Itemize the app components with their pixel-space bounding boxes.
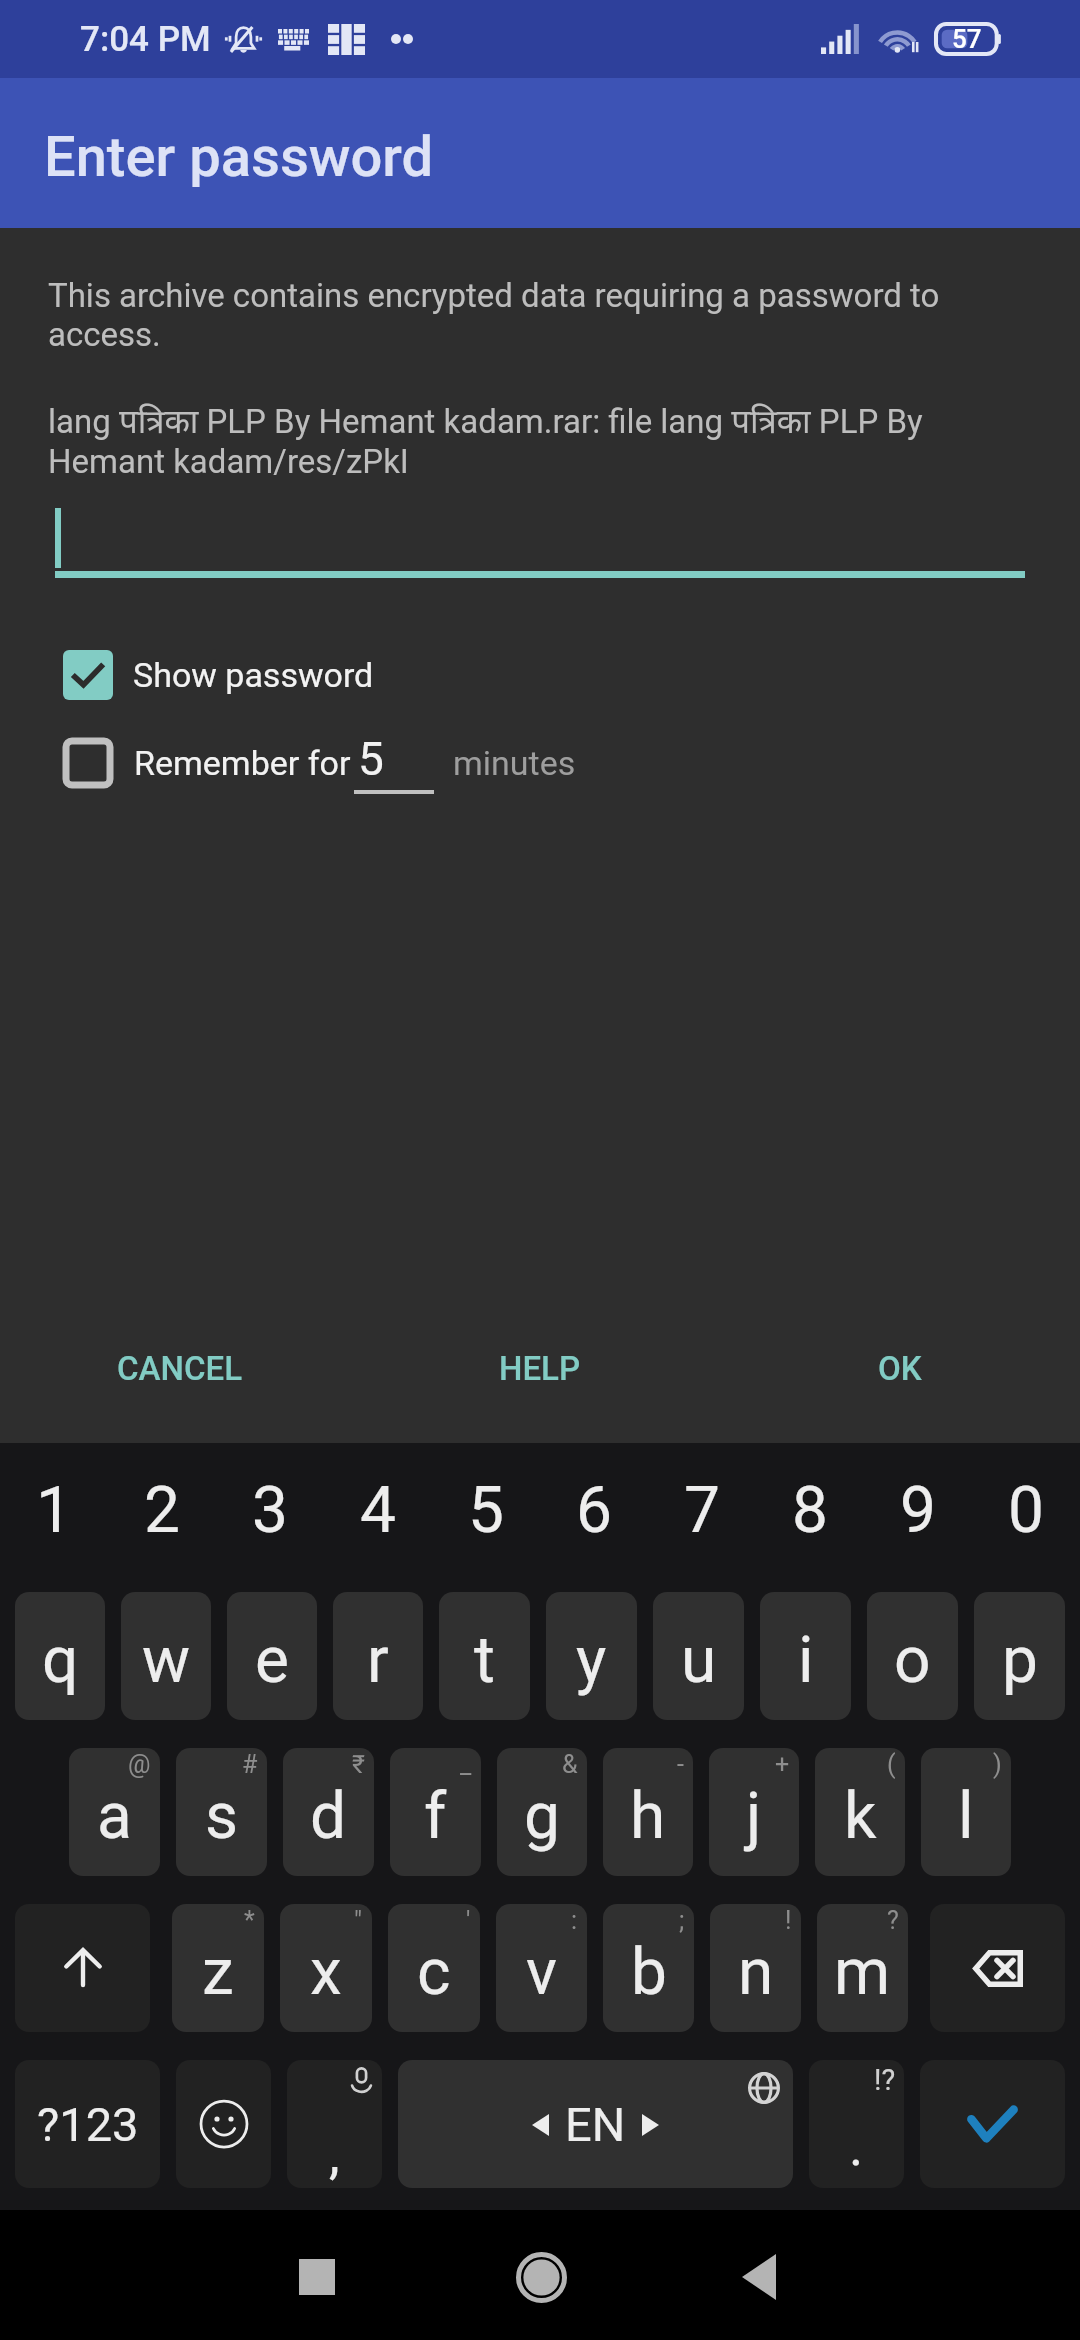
- staticText: ': [466, 1906, 471, 1935]
- button[interactable]: 3: [216, 1443, 324, 1592]
- button[interactable]: u: [653, 1592, 744, 1720]
- button[interactable]: .: [809, 2060, 904, 2188]
- staticText: g: [524, 1779, 560, 1854]
- staticText: e: [255, 1623, 289, 1698]
- button[interactable]: x: [280, 1904, 372, 2032]
- staticText: s: [205, 1779, 239, 1854]
- staticText: n: [738, 1935, 774, 2010]
- staticText: 2: [144, 1473, 180, 1548]
- button[interactable]: t: [439, 1592, 530, 1720]
- button[interactable]: m: [817, 1904, 908, 2032]
- button[interactable]: k: [815, 1748, 905, 1876]
- button[interactable]: j: [709, 1748, 799, 1876]
- staticText: q: [42, 1623, 79, 1698]
- staticText: i: [798, 1623, 814, 1698]
- staticText: *: [244, 1906, 255, 1935]
- staticText: z: [202, 1935, 234, 2010]
- staticText: _: [460, 1750, 472, 1779]
- staticText: o: [894, 1623, 931, 1698]
- button[interactable]: 6: [540, 1443, 648, 1592]
- button[interactable]: ,: [287, 2060, 382, 2188]
- button[interactable]: 9: [864, 1443, 972, 1592]
- button[interactable]: Back: [703, 2221, 815, 2333]
- staticText: f: [424, 1779, 447, 1854]
- button[interactable]: l: [921, 1748, 1011, 1876]
- staticText: y: [576, 1623, 607, 1698]
- button[interactable]: 2: [108, 1443, 216, 1592]
- button[interactable]: b: [603, 1904, 694, 2032]
- staticText: HELP: [499, 1349, 581, 1388]
- staticText: r: [367, 1623, 389, 1698]
- button[interactable]: Home: [485, 2221, 597, 2333]
- button[interactable]: Enter: [920, 2060, 1065, 2188]
- staticText: @: [128, 1750, 151, 1779]
- button[interactable]: Show password: [0, 644, 1080, 706]
- button[interactable]: 1: [0, 1443, 108, 1592]
- staticText: x: [310, 1935, 342, 2010]
- button[interactable]: OK: [720, 1318, 1080, 1418]
- staticText: 4: [360, 1473, 396, 1548]
- button[interactable]: Shift: [15, 1904, 150, 2032]
- staticText: !: [785, 1906, 792, 1935]
- button[interactable]: f: [390, 1748, 481, 1876]
- button[interactable]: v: [496, 1904, 587, 2032]
- staticText: minutes: [453, 743, 576, 783]
- staticText: lang पत्रिका PLP By Hemant kadam.rar: fi…: [48, 398, 923, 481]
- button[interactable]: c: [388, 1904, 480, 2032]
- button[interactable]: h: [603, 1748, 693, 1876]
- staticText: 57: [952, 24, 982, 54]
- button[interactable]: 8: [756, 1443, 864, 1592]
- button[interactable]: [0, 504, 1080, 580]
- button[interactable]: d: [283, 1748, 374, 1876]
- button[interactable]: o: [867, 1592, 958, 1720]
- staticText: ?: [887, 1906, 899, 1935]
- staticText: :: [571, 1906, 578, 1935]
- staticText: ₹: [352, 1750, 365, 1779]
- button[interactable]: g: [497, 1748, 587, 1876]
- staticText: Show password: [133, 655, 374, 695]
- button[interactable]: n: [710, 1904, 801, 2032]
- button[interactable]: i: [760, 1592, 851, 1720]
- button[interactable]: 0: [972, 1443, 1080, 1592]
- staticText: (: [887, 1750, 896, 1779]
- button[interactable]: EN: [398, 2060, 793, 2188]
- button[interactable]: Recents: [261, 2221, 373, 2333]
- staticText: 6: [576, 1473, 612, 1548]
- staticText: #: [242, 1750, 258, 1779]
- button[interactable]: s: [176, 1748, 267, 1876]
- button[interactable]: Backspace: [930, 1904, 1065, 2032]
- button[interactable]: Emoji: [176, 2060, 271, 2188]
- staticText: ,: [329, 2123, 340, 2186]
- button[interactable]: z: [172, 1904, 264, 2032]
- button[interactable]: a: [69, 1748, 160, 1876]
- staticText: v: [526, 1935, 557, 2010]
- button[interactable]: r: [333, 1592, 423, 1720]
- staticText: 7: [684, 1473, 720, 1548]
- button[interactable]: HELP: [360, 1318, 720, 1418]
- button[interactable]: 4: [324, 1443, 432, 1592]
- button[interactable]: w: [121, 1592, 211, 1720]
- button[interactable]: ?123: [15, 2060, 160, 2188]
- staticText: Enter password: [44, 124, 434, 190]
- staticText: t: [474, 1623, 495, 1698]
- staticText: ;: [679, 1906, 685, 1935]
- button[interactable]: p: [974, 1592, 1065, 1720]
- staticText: &: [562, 1750, 578, 1779]
- staticText: .: [849, 2115, 864, 2178]
- staticText: OK: [878, 1349, 922, 1388]
- staticText: +: [775, 1750, 790, 1779]
- button[interactable]: y: [546, 1592, 637, 1720]
- button[interactable]: e: [227, 1592, 317, 1720]
- button[interactable]: 7: [648, 1443, 756, 1592]
- staticText: 0: [1008, 1473, 1044, 1548]
- staticText: m: [834, 1935, 891, 2010]
- staticText: ?123: [37, 2097, 139, 2152]
- button[interactable]: q: [15, 1592, 105, 1720]
- button[interactable]: CANCEL: [0, 1318, 360, 1418]
- staticText: CANCEL: [117, 1349, 243, 1388]
- staticText: EN: [565, 2097, 626, 2152]
- staticText: !?: [874, 2063, 896, 2097]
- button[interactable]: Remember for: [0, 732, 1080, 794]
- staticText: ": [354, 1906, 363, 1935]
- button[interactable]: 5: [432, 1443, 540, 1592]
